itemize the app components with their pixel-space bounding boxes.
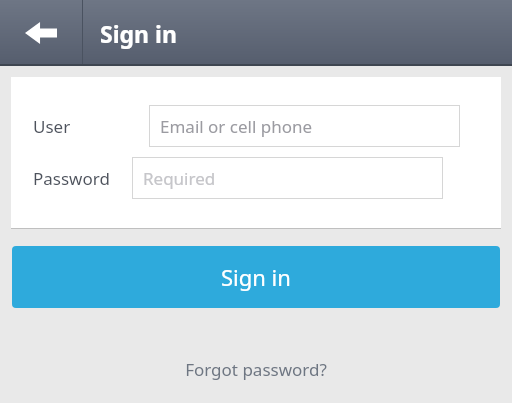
staticText: Forgot password? — [185, 358, 327, 381]
staticText: Password — [33, 167, 110, 190]
staticText: User — [33, 115, 71, 138]
staticText: Sign in — [221, 262, 291, 292]
button[interactable]: Required — [132, 157, 443, 199]
staticText: Sign in — [100, 18, 177, 49]
button[interactable]: Back — [0, 0, 82, 66]
button[interactable]: Email or cell phone — [149, 105, 460, 147]
button[interactable]: Sign in — [12, 246, 500, 308]
staticText: Email or cell phone — [160, 115, 313, 138]
staticText: Required — [143, 167, 216, 190]
button[interactable]: Forgot password? — [0, 352, 512, 386]
